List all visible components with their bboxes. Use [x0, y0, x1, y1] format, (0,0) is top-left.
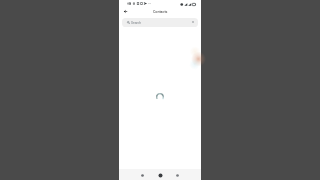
- staticText: Search: [131, 21, 142, 25]
- button[interactable]: Home: [156, 169, 165, 180]
- staticText: Contacts: [153, 10, 168, 14]
- button[interactable]: Search: [122, 18, 198, 27]
- button[interactable]: Back: [138, 169, 147, 180]
- button[interactable]: Navigate up: [121, 7, 129, 15]
- button[interactable]: Clear search: [191, 20, 195, 24]
- button[interactable]: Recent apps: [173, 169, 182, 180]
